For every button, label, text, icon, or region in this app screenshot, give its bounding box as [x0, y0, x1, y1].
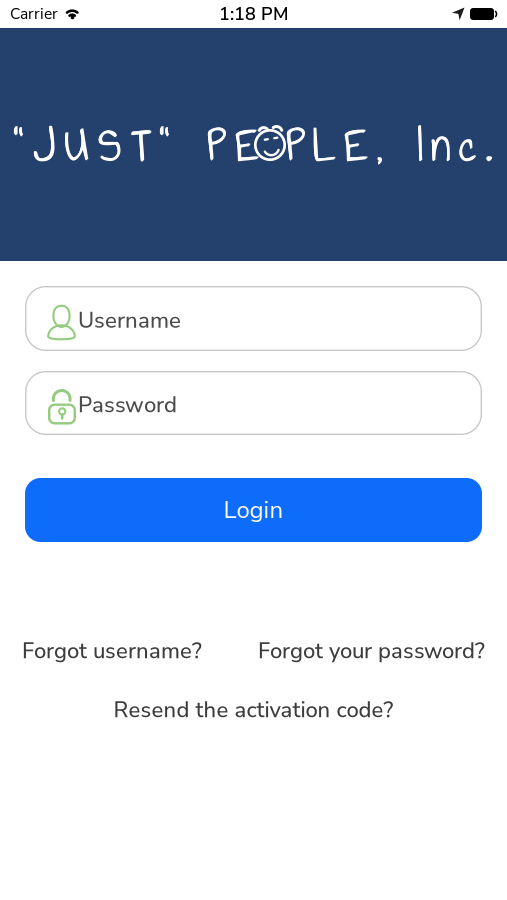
- button[interactable]: Password: [25, 371, 482, 435]
- staticText: Resend the activation code?: [113, 695, 393, 725]
- staticText: "JUST" PE: [13, 112, 259, 181]
- staticText: Login: [223, 494, 283, 526]
- staticText: Carrier: [10, 3, 58, 25]
- button[interactable]: Login: [25, 478, 482, 542]
- staticText: PLE, Inc.: [286, 112, 492, 181]
- staticText: PLE, Inc.: [287, 111, 493, 180]
- staticText: Password: [78, 390, 177, 420]
- staticText: "JUST" PE: [14, 111, 260, 180]
- button[interactable]: Forgot your password?: [258, 636, 485, 666]
- staticText: Forgot username?: [22, 636, 202, 666]
- staticText: PLE, Inc.: [286, 111, 492, 180]
- staticText: "JUST" PE: [13, 111, 259, 180]
- staticText: 1:18 PM: [219, 2, 288, 26]
- staticText: Username: [78, 305, 181, 336]
- staticText: Forgot your password?: [258, 636, 485, 666]
- button[interactable]: Resend the activation code?: [113, 695, 393, 725]
- button[interactable]: Forgot username?: [22, 636, 202, 666]
- button[interactable]: Username: [25, 286, 482, 351]
